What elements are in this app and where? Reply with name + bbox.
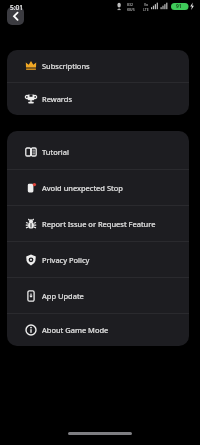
staticText: Tutorial: [42, 147, 69, 157]
button[interactable]: Rewards: [7, 83, 189, 115]
button[interactable]: Tutorial: [7, 134, 189, 169]
staticText: Vo: [144, 2, 149, 7]
button[interactable]: Privacy Policy: [7, 242, 189, 277]
staticText: LTE: [143, 7, 149, 12]
staticText: Privacy Policy: [42, 255, 90, 265]
staticText: About Game Mode: [42, 325, 109, 335]
staticText: Avoid unexpected Stop: [42, 183, 123, 193]
staticText: Subscriptions: [42, 61, 90, 71]
button[interactable]: About Game Mode: [7, 314, 189, 346]
button[interactable]: Subscriptions: [7, 50, 189, 82]
button[interactable]: Avoid unexpected Stop: [7, 170, 189, 205]
staticText: Rewards: [42, 94, 72, 104]
staticText: App Update: [42, 291, 84, 301]
staticText: Report Issue or Request Feature: [42, 219, 156, 229]
button[interactable]: [7, 7, 24, 25]
staticText: 91: [176, 3, 182, 10]
staticText: KB/S: [127, 7, 135, 12]
button[interactable]: App Update: [7, 278, 189, 313]
button[interactable]: Report Issue or Request Feature: [7, 206, 189, 241]
staticText: 832: [127, 2, 134, 7]
staticText: 5:01: [10, 3, 23, 12]
